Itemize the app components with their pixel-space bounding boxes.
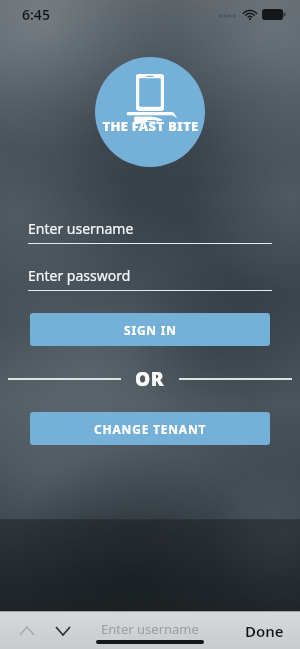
button[interactable]: Enter password [28,266,272,291]
button[interactable]: Previous field [14,618,40,644]
staticText: 6:45 [22,5,50,24]
staticText: CHANGE TENANT [94,421,207,437]
staticText: Done [245,621,284,641]
other: The Fast Bite logo [95,57,205,167]
staticText: OR [135,366,165,392]
staticText: Enter username [101,620,199,638]
staticText: Enter username [28,219,134,238]
staticText: SIGN IN [124,322,177,338]
staticText: THE FAST BITE [102,117,199,135]
button[interactable]: Done [239,617,290,645]
button[interactable]: CHANGE TENANT [30,412,270,445]
button[interactable]: Enter username [28,219,272,244]
button[interactable]: Next field [50,618,76,644]
button[interactable]: SIGN IN [30,313,270,346]
staticText: Enter password [28,266,131,285]
